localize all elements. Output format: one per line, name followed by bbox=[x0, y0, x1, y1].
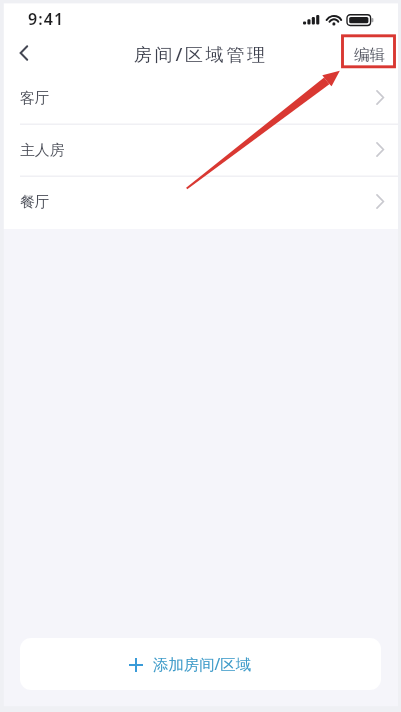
staticText: 主人房 bbox=[20, 141, 65, 160]
button[interactable]: 添加房间/区域 bbox=[20, 638, 381, 690]
button[interactable]: 主人房 bbox=[0, 125, 401, 177]
button[interactable]: 编辑 bbox=[348, 40, 391, 70]
staticText: 客厅 bbox=[20, 89, 50, 108]
staticText: 添加房间/区域 bbox=[153, 654, 252, 675]
button[interactable]: Back bbox=[0, 36, 48, 73]
staticText: 编辑 bbox=[354, 45, 385, 65]
staticText: 餐厅 bbox=[20, 193, 50, 212]
button[interactable]: 客厅 bbox=[0, 73, 401, 125]
staticText: 9:41 bbox=[28, 8, 65, 30]
button[interactable]: 餐厅 bbox=[0, 177, 401, 229]
staticText: 房间/区域管理 bbox=[134, 42, 268, 67]
